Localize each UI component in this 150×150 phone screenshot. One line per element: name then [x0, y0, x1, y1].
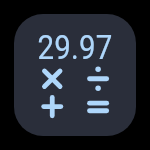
button[interactable]: Multiply: [39, 66, 65, 92]
button[interactable]: Equals: [85, 94, 111, 120]
button[interactable]: Divide: [85, 66, 111, 92]
button[interactable]: Calculator: [14, 14, 136, 136]
button[interactable]: Add: [39, 94, 65, 120]
staticText: 29.97: [21, 28, 129, 136]
